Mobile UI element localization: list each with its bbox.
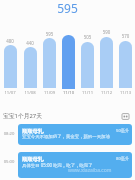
staticText: 570 xyxy=(116,33,135,39)
button[interactable] xyxy=(100,37,113,88)
staticText: 具体生日 05:00 吃完，吃了，吃完了 xyxy=(22,162,93,168)
staticText: 480 xyxy=(0,38,20,44)
staticText: 08:20 xyxy=(0,131,18,137)
staticText: 11/10 xyxy=(59,90,78,96)
staticText: 顺顺母乳, xyxy=(22,127,45,134)
staticText: 595 xyxy=(0,0,135,16)
button[interactable] xyxy=(24,47,37,88)
button[interactable] xyxy=(81,42,94,88)
button[interactable] xyxy=(119,41,132,88)
staticText: 50毫升 xyxy=(116,128,130,134)
button[interactable]: 顺顺母乳, xyxy=(18,124,132,145)
staticText: 05:00 xyxy=(0,159,18,165)
staticText: 11/07 xyxy=(0,90,20,96)
button[interactable] xyxy=(4,45,17,88)
staticText: www.xiazaiba.com xyxy=(68,167,112,174)
button[interactable]: 顺顺母乳, xyxy=(18,152,132,178)
button[interactable] xyxy=(62,35,75,89)
staticText: 440 xyxy=(20,40,40,46)
staticText: 595 xyxy=(40,31,59,37)
staticText: 590 xyxy=(97,29,116,35)
staticText: 80毫升 xyxy=(116,156,130,162)
staticText: 宝宝1个月27天 xyxy=(3,112,42,120)
button[interactable] xyxy=(43,38,56,88)
staticText: 11/13 xyxy=(116,90,135,96)
staticText: 11/11 xyxy=(78,90,97,96)
staticText: 11/12 xyxy=(97,90,116,96)
staticText: 11/08 xyxy=(20,90,40,96)
staticText: 顺顺母乳, xyxy=(22,155,45,162)
staticText: 宝宝今天不添加奶了，黄金宝，新的一天加油 xyxy=(22,134,110,140)
staticText: 505 xyxy=(78,34,97,40)
staticText: 11/09 xyxy=(40,90,59,96)
button[interactable]: Records xyxy=(122,113,129,120)
